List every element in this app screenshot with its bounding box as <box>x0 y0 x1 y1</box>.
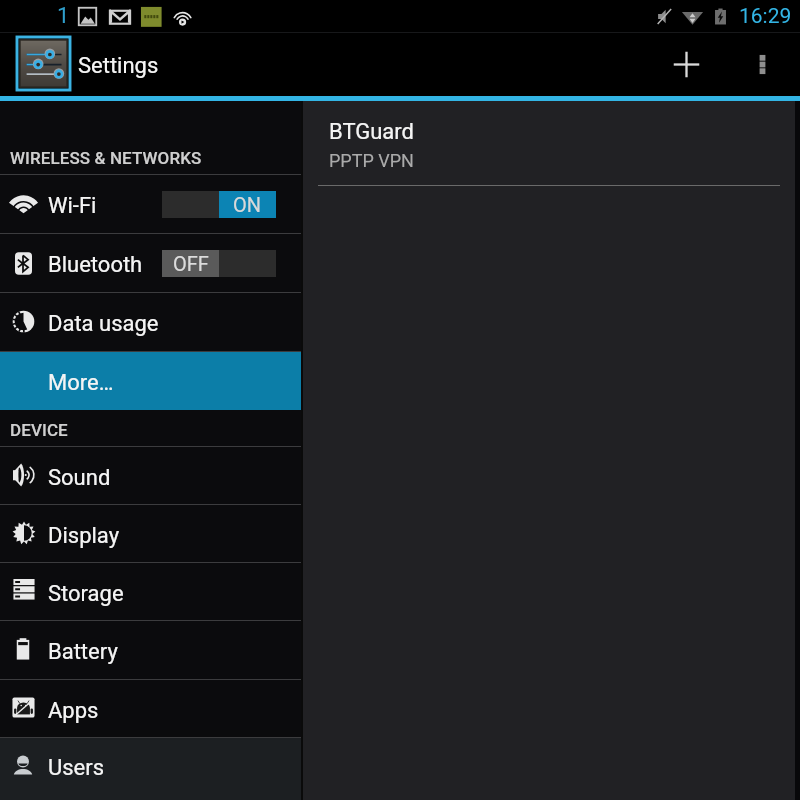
staticText: DEVICE <box>10 420 68 440</box>
staticText: Storage <box>48 581 124 607</box>
staticText: Data usage <box>48 311 159 337</box>
button[interactable]: BTGuard <box>303 101 795 185</box>
button[interactable]: On <box>162 191 276 218</box>
staticText: WIRELESS & NETWORKS <box>10 148 202 168</box>
button[interactable]: Off <box>162 250 276 277</box>
button[interactable]: More… <box>0 352 301 410</box>
staticText: OFF <box>173 252 209 275</box>
button[interactable]: Sound <box>0 447 301 504</box>
staticText: Bluetooth <box>48 252 143 278</box>
button[interactable]: Apps <box>0 680 301 737</box>
staticText: Display <box>48 523 120 549</box>
staticText: 1 <box>57 3 70 29</box>
staticText: Battery <box>48 639 118 665</box>
staticText: Users <box>48 755 105 781</box>
staticText: Wi-Fi <box>48 193 97 219</box>
staticText: Apps <box>48 698 99 724</box>
button[interactable]: More options <box>731 33 793 96</box>
button[interactable]: Data usage <box>0 293 301 351</box>
staticText: Sound <box>48 465 111 491</box>
button[interactable]: Battery <box>0 621 301 679</box>
button[interactable]: Add VPN profile <box>655 33 717 96</box>
staticText: BTGuard <box>329 119 414 145</box>
staticText: Settings <box>78 53 159 79</box>
button[interactable]: Users <box>0 738 301 800</box>
staticText: 16:29 <box>739 4 792 29</box>
staticText: ON <box>233 193 262 216</box>
button[interactable]: Wi-Fi <box>0 175 301 233</box>
button[interactable]: Bluetooth <box>0 234 301 292</box>
staticText: More… <box>48 370 114 396</box>
button[interactable]: Storage <box>0 563 301 620</box>
staticText: PPTP VPN <box>329 150 414 171</box>
button[interactable]: Display <box>0 505 301 562</box>
